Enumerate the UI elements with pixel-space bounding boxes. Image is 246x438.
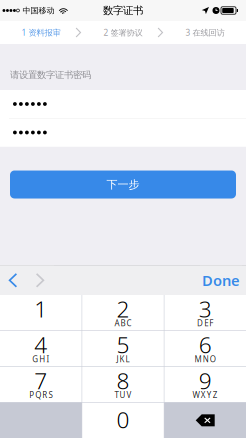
staticText: JKL (116, 354, 130, 364)
staticText: 4 (34, 329, 47, 360)
button[interactable]: Done (200, 266, 242, 295)
button[interactable]: 4 (0, 331, 82, 366)
staticText: 1 (34, 294, 47, 324)
button[interactable]: 8 (82, 367, 164, 402)
button[interactable] (0, 118, 246, 146)
button[interactable]: 3 在线回访 (164, 21, 246, 44)
staticText: Done (202, 271, 240, 290)
staticText: ABC (114, 318, 132, 328)
staticText: 2 签署协议 (103, 27, 142, 38)
button[interactable]: Next field (26, 266, 54, 295)
staticText: MNO (195, 354, 216, 364)
staticText: PQRS (29, 390, 52, 400)
button[interactable]: 下一步 (10, 170, 236, 198)
staticText: 2 (116, 294, 129, 324)
button[interactable]: 2 (82, 295, 164, 330)
button[interactable]: Delete (164, 403, 246, 438)
button[interactable] (0, 90, 246, 118)
staticText: 数字证书 (103, 4, 143, 17)
staticText: 5 (116, 329, 129, 360)
staticText: 3 在线回访 (185, 27, 224, 38)
staticText: 请设置数字证书密码 (10, 69, 91, 81)
button[interactable]: 1 资料报审 (0, 21, 82, 44)
button[interactable]: 6 (164, 331, 246, 366)
staticText: TUV (114, 390, 132, 400)
button[interactable]: 1 (0, 295, 82, 330)
button[interactable]: Previous field (0, 266, 26, 295)
staticText: DEF (197, 318, 213, 328)
button[interactable]: 5 (82, 331, 164, 366)
staticText: 3 (199, 294, 212, 324)
staticText: GHI (32, 354, 49, 364)
button[interactable]: 3 (164, 295, 246, 330)
staticText: 下一步 (106, 177, 139, 191)
staticText: 9 (199, 365, 212, 395)
staticText: WXYZ (193, 390, 218, 400)
button[interactable]: 9 (164, 367, 246, 402)
staticText: 7 (34, 365, 47, 395)
button[interactable]: 7 (0, 367, 82, 402)
button[interactable]: 2 签署协议 (82, 21, 164, 44)
staticText: 0 (116, 404, 129, 434)
staticText: 8 (116, 365, 129, 395)
button[interactable]: 0 (82, 403, 164, 438)
staticText: 6 (199, 329, 212, 360)
staticText: 1 资料报审 (21, 27, 60, 38)
staticText: 中国移动 (22, 5, 54, 16)
